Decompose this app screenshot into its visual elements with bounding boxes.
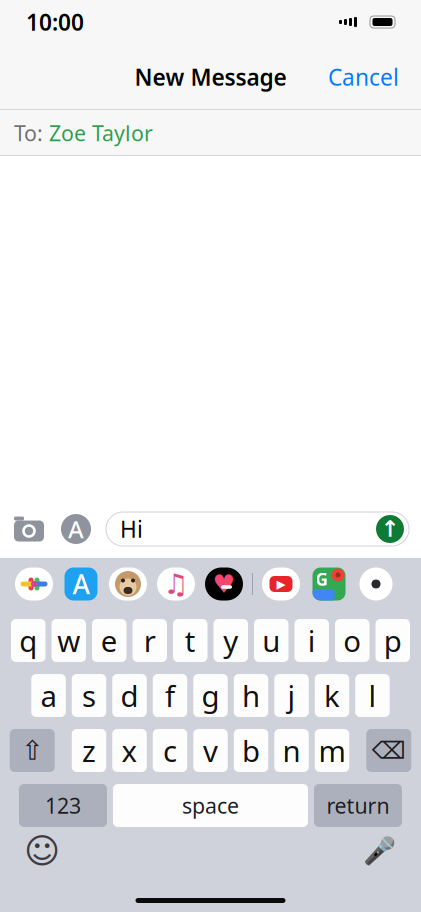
staticText: f bbox=[165, 676, 175, 715]
staticText: A bbox=[72, 566, 89, 602]
button[interactable]: c bbox=[153, 729, 187, 772]
staticText: r bbox=[144, 621, 156, 660]
staticText: n bbox=[282, 731, 300, 770]
button[interactable]: i bbox=[294, 619, 329, 662]
staticText: Zoe Taylor bbox=[49, 119, 153, 147]
staticText: A bbox=[68, 513, 84, 545]
button[interactable]: space bbox=[113, 784, 308, 827]
button[interactable]: d bbox=[112, 674, 147, 717]
button[interactable]: n bbox=[274, 729, 309, 772]
staticText: x bbox=[121, 731, 137, 770]
button[interactable]: l bbox=[355, 674, 390, 717]
button[interactable]: Cancel bbox=[314, 52, 413, 102]
staticText: Hi bbox=[120, 514, 143, 544]
button[interactable]: g bbox=[193, 674, 228, 717]
staticText: v bbox=[203, 731, 218, 770]
staticText: G bbox=[315, 567, 328, 590]
button[interactable]: iMessage apps bbox=[59, 512, 93, 546]
button[interactable]: b bbox=[234, 729, 268, 772]
staticText: ↑ bbox=[380, 516, 399, 542]
button[interactable]: o bbox=[335, 619, 369, 662]
button[interactable]: s bbox=[72, 674, 106, 717]
staticText: u bbox=[262, 621, 280, 660]
staticText: 123 bbox=[45, 791, 81, 820]
staticText: s bbox=[82, 676, 96, 715]
button[interactable]: 123 bbox=[19, 784, 107, 827]
button[interactable]: m bbox=[315, 729, 349, 772]
staticText: New Message bbox=[134, 62, 286, 92]
staticText: m bbox=[318, 731, 345, 770]
button[interactable]: More apps bbox=[357, 565, 395, 603]
staticText: z bbox=[82, 731, 96, 770]
staticText: d bbox=[120, 676, 138, 715]
staticText: ♥ bbox=[212, 570, 235, 598]
button[interactable]: e bbox=[92, 619, 126, 662]
button[interactable]: return bbox=[314, 784, 402, 827]
staticText: l bbox=[368, 676, 376, 715]
button[interactable]: Maps bbox=[309, 565, 349, 603]
staticText: g bbox=[201, 676, 219, 715]
staticText: ⌫ bbox=[372, 737, 406, 764]
button[interactable]: u bbox=[254, 619, 288, 662]
staticText: y bbox=[223, 621, 238, 660]
staticText: b bbox=[242, 731, 260, 770]
button[interactable]: To: bbox=[0, 110, 421, 156]
button[interactable]: v bbox=[193, 729, 228, 772]
staticText: To: bbox=[14, 119, 43, 147]
staticText: w bbox=[57, 621, 80, 660]
staticText: 🎤 bbox=[362, 836, 395, 866]
button[interactable]: h bbox=[234, 674, 268, 717]
staticText: t bbox=[185, 621, 196, 660]
staticText: ♫ bbox=[163, 568, 188, 600]
staticText: p bbox=[384, 621, 402, 660]
staticText: c bbox=[163, 731, 177, 770]
button[interactable]: j bbox=[274, 674, 309, 717]
staticText: h bbox=[242, 676, 260, 715]
button[interactable]: Emoji keyboard bbox=[20, 831, 64, 871]
button[interactable]: Memoji bbox=[108, 565, 148, 603]
button[interactable]: Delete bbox=[366, 729, 411, 772]
button[interactable]: x bbox=[112, 729, 147, 772]
staticText: a bbox=[40, 676, 56, 715]
staticText: return bbox=[326, 791, 389, 820]
button[interactable]: Dictation bbox=[357, 831, 401, 871]
button[interactable]: r bbox=[132, 619, 167, 662]
staticText: 10:00 bbox=[26, 7, 84, 37]
staticText: e bbox=[101, 621, 118, 660]
button[interactable]: YouTube bbox=[261, 565, 301, 603]
button[interactable]: Shift bbox=[10, 729, 55, 772]
button[interactable]: Photos bbox=[14, 565, 54, 603]
button[interactable]: a bbox=[31, 674, 66, 717]
staticText: q bbox=[19, 621, 37, 660]
button[interactable]: z bbox=[72, 729, 106, 772]
button[interactable]: Take photo bbox=[12, 512, 46, 546]
staticText: ☺ bbox=[24, 831, 60, 871]
button[interactable]: w bbox=[51, 619, 86, 662]
button[interactable]: f bbox=[153, 674, 187, 717]
button[interactable]: k bbox=[315, 674, 349, 717]
staticText: ▶ bbox=[276, 577, 285, 591]
staticText: space bbox=[182, 791, 239, 820]
button[interactable]: Fitness bbox=[204, 565, 244, 603]
staticText: k bbox=[324, 676, 340, 715]
staticText: ⇧ bbox=[21, 735, 43, 766]
button[interactable]: Send bbox=[374, 513, 406, 545]
staticText: Cancel bbox=[328, 62, 399, 92]
button[interactable]: y bbox=[213, 619, 248, 662]
staticText: o bbox=[343, 621, 361, 660]
button[interactable]: Music bbox=[156, 565, 196, 603]
staticText: i bbox=[308, 621, 316, 660]
button[interactable]: q bbox=[11, 619, 45, 662]
staticText: j bbox=[287, 676, 295, 715]
button[interactable]: p bbox=[375, 619, 410, 662]
button[interactable]: App Store bbox=[62, 565, 100, 603]
button[interactable]: t bbox=[173, 619, 207, 662]
